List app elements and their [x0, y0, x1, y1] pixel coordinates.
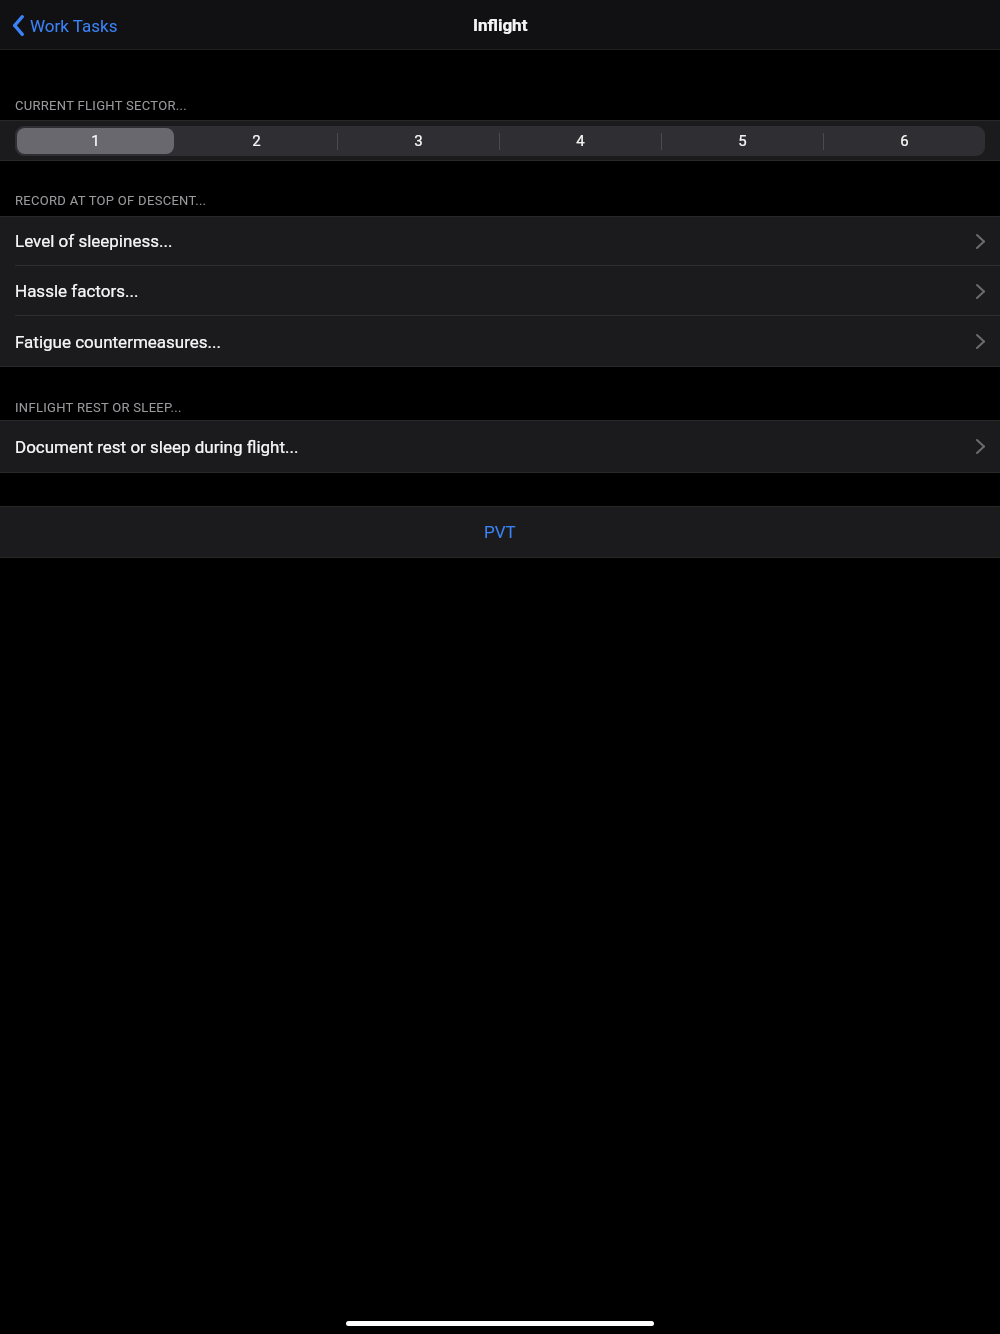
other: Open	[976, 334, 985, 349]
other: Back	[13, 15, 24, 36]
staticText: 2	[252, 132, 261, 150]
button[interactable]: 3	[337, 126, 499, 156]
button[interactable]: Back	[0, 10, 128, 41]
other: Open	[976, 439, 985, 454]
staticText: CURRENT FLIGHT SECTOR...	[15, 98, 187, 113]
button[interactable]: Fatigue countermeasures...	[0, 316, 1000, 367]
staticText: Work Tasks	[30, 16, 118, 36]
button[interactable]: 4	[499, 126, 661, 156]
button[interactable]: 2	[176, 126, 337, 156]
other: Open	[976, 284, 985, 299]
staticText: RECORD AT TOP OF DESCENT...	[15, 193, 207, 208]
staticText: Document rest or sleep during flight...	[15, 437, 976, 457]
staticText: Hassle factors...	[15, 281, 976, 301]
button[interactable]: PVT	[0, 506, 1000, 558]
staticText: 4	[576, 132, 585, 150]
staticText: 5	[738, 132, 747, 150]
staticText: PVT	[484, 522, 516, 542]
staticText: Level of sleepiness...	[15, 231, 976, 251]
staticText: INFLIGHT REST OR SLEEP...	[15, 400, 182, 415]
staticText: 6	[900, 132, 909, 150]
button[interactable]: 5	[661, 126, 823, 156]
staticText: Fatigue countermeasures...	[15, 332, 976, 352]
staticText: 3	[414, 132, 423, 150]
staticText: 1	[91, 132, 100, 150]
other: Open	[976, 234, 985, 249]
button[interactable]: 6	[823, 126, 985, 156]
button[interactable]: Level of sleepiness...	[0, 216, 1000, 266]
button[interactable]: Document rest or sleep during flight...	[0, 420, 1000, 473]
button[interactable]: 1	[15, 126, 176, 156]
staticText: Inflight	[473, 15, 528, 35]
button[interactable]: Hassle factors...	[0, 266, 1000, 316]
